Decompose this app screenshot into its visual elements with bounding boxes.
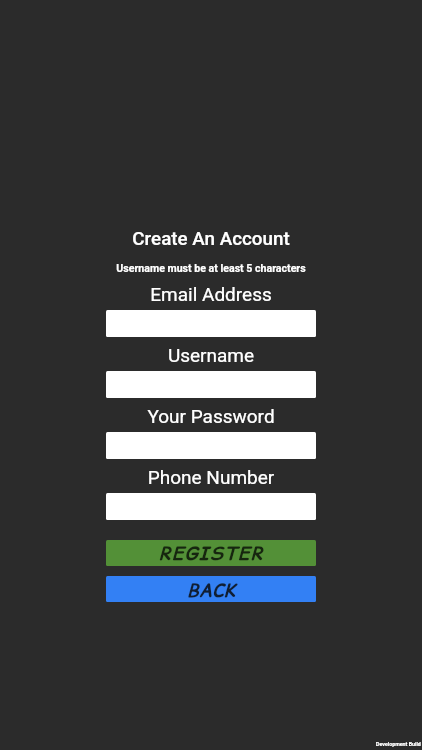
staticText: BACK bbox=[187, 577, 235, 602]
staticText: Email Address bbox=[0, 283, 422, 305]
staticText: Your Password bbox=[0, 405, 422, 427]
button[interactable]: REGISTER bbox=[106, 540, 316, 566]
button[interactable]: BACK bbox=[106, 576, 316, 602]
staticText: Username bbox=[0, 344, 422, 366]
staticText: Phone Number bbox=[0, 466, 422, 488]
staticText: Development Build bbox=[376, 741, 421, 747]
staticText: Create An Account bbox=[0, 228, 422, 250]
staticText: Username must be at least 5 characters bbox=[0, 262, 422, 274]
staticText: REGISTER bbox=[159, 540, 264, 566]
